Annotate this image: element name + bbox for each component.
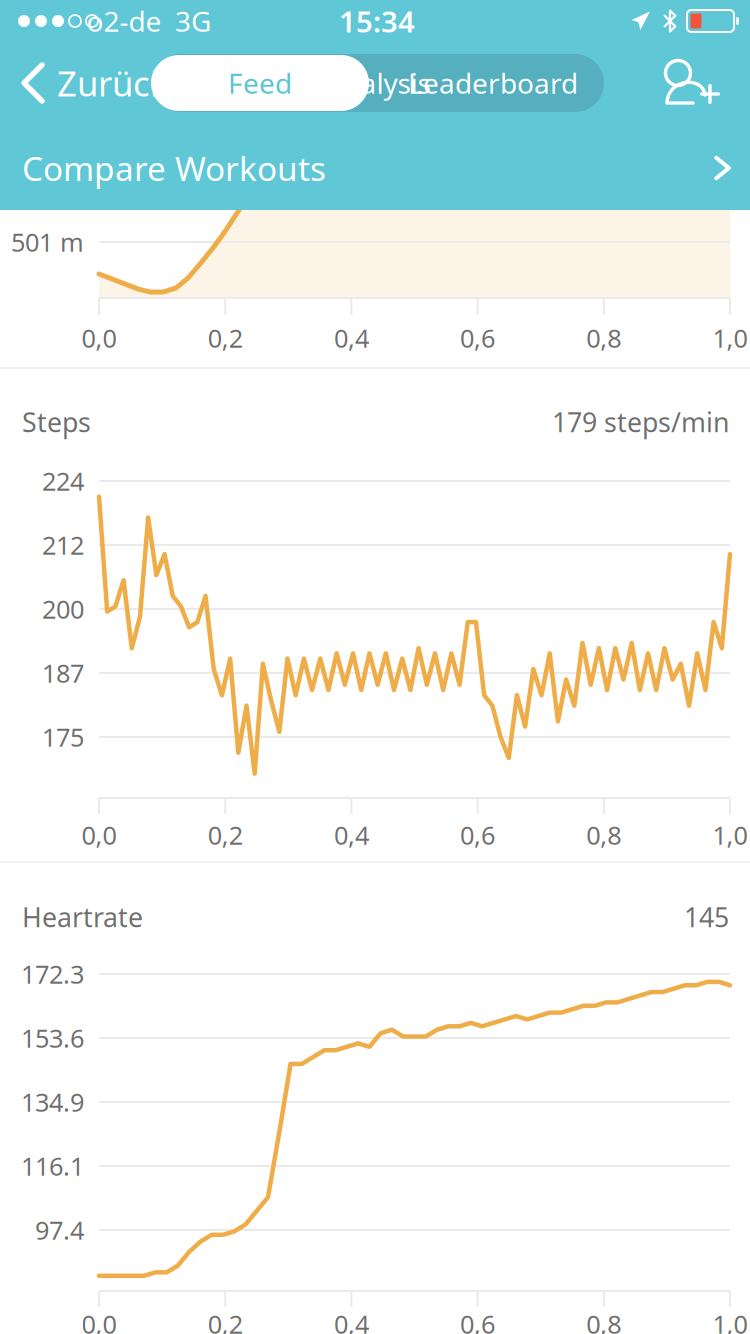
staticText: 134.9	[21, 1085, 84, 1119]
staticText: Steps	[22, 404, 91, 440]
staticText: 212	[42, 528, 84, 562]
staticText: 172.3	[21, 957, 84, 991]
button[interactable]: Feed	[151, 55, 369, 111]
staticText: 1,0	[712, 321, 747, 355]
staticText: 0,8	[586, 1307, 621, 1334]
staticText: 97.4	[35, 1213, 84, 1247]
staticText: 3G	[175, 2, 211, 40]
staticText: 0,0	[81, 818, 116, 852]
staticText: 0,2	[208, 818, 243, 852]
staticText: 0,2	[208, 1307, 243, 1334]
staticText: 0,2	[208, 321, 243, 355]
staticText: 153.6	[21, 1021, 84, 1055]
staticText: Compare Workouts	[22, 146, 326, 190]
staticText: 179 steps/min	[552, 404, 729, 440]
staticText: 0,4	[334, 1307, 369, 1334]
staticText: 501 m	[11, 225, 84, 259]
staticText: 116.1	[21, 1149, 84, 1183]
button[interactable]: Add friend	[656, 52, 730, 114]
button[interactable]: Analysis	[301, 47, 454, 119]
staticText: Zurück	[57, 60, 169, 106]
button[interactable]: Compare Workouts	[0, 126, 750, 210]
staticText: Leaderboard	[408, 64, 578, 102]
staticText: Heartrate	[22, 899, 143, 935]
staticText: 0,8	[586, 818, 621, 852]
staticText: 1,0	[712, 818, 747, 852]
staticText: 224	[42, 464, 84, 498]
staticText: 0,0	[81, 1307, 116, 1334]
staticText: 187	[42, 656, 84, 690]
staticText: o2-de	[86, 2, 161, 40]
staticText: 0,4	[334, 818, 369, 852]
staticText: Feed	[228, 64, 292, 102]
staticText: 0,6	[460, 1307, 495, 1334]
staticText: 1,0	[712, 1307, 747, 1334]
button[interactable]: Zurück	[3, 48, 177, 118]
staticText: 0,0	[81, 321, 116, 355]
staticText: 15:34	[339, 1, 415, 40]
button[interactable]: Leaderboard	[394, 47, 592, 119]
staticText: 145	[684, 899, 729, 935]
staticText: 200	[42, 592, 84, 626]
staticText: 175	[42, 720, 84, 754]
staticText: 0,4	[334, 321, 369, 355]
staticText: 0,8	[586, 321, 621, 355]
staticText: 0,6	[460, 818, 495, 852]
staticText: Analysis	[325, 64, 430, 102]
staticText: 0,6	[460, 321, 495, 355]
